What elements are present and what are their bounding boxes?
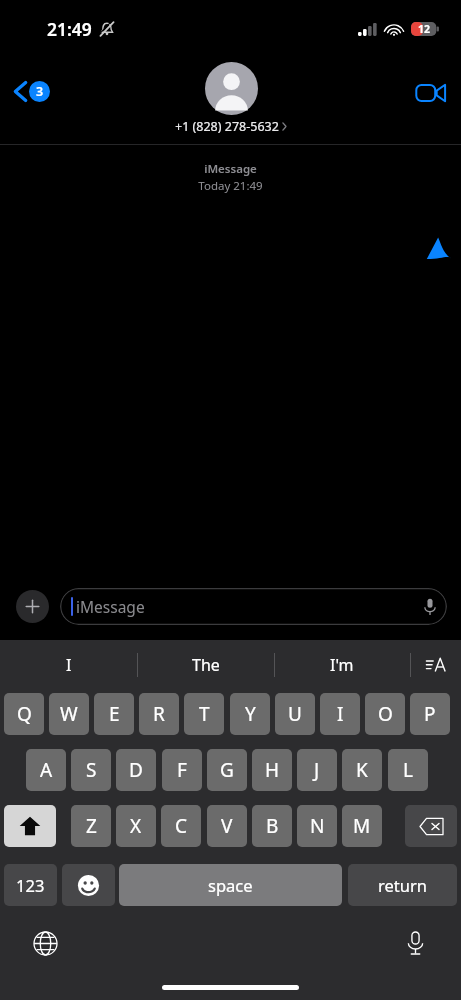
button[interactable]: Back to conversations, 3 unread xyxy=(8,76,56,107)
button[interactable]: iMessage text field xyxy=(60,588,447,625)
staticText: 3 xyxy=(36,83,44,100)
button[interactable]: M xyxy=(342,805,382,847)
staticText: space xyxy=(208,874,253,896)
button[interactable]: F xyxy=(162,749,202,791)
button[interactable]: Dictation xyxy=(400,928,430,958)
button[interactable]: L xyxy=(388,749,428,791)
staticText: J xyxy=(314,757,320,783)
staticText: A xyxy=(40,757,53,783)
staticText: R xyxy=(153,701,165,727)
staticText: V xyxy=(221,813,233,839)
staticText: I'm xyxy=(330,654,354,676)
staticText: W xyxy=(60,701,78,727)
button[interactable]: X xyxy=(116,805,156,847)
staticText: O xyxy=(378,701,393,727)
button[interactable]: Q xyxy=(4,693,44,735)
button[interactable]: Y xyxy=(230,693,270,735)
button[interactable]: U xyxy=(275,693,315,735)
button[interactable]: 123 xyxy=(4,864,57,906)
button[interactable]: K xyxy=(342,749,382,791)
staticText: The xyxy=(192,654,220,676)
button[interactable]: FaceTime video call xyxy=(411,78,451,108)
staticText: Today 21:49 xyxy=(0,178,461,194)
staticText: U xyxy=(288,701,302,727)
button[interactable]: C xyxy=(161,805,201,847)
button[interactable]: The xyxy=(137,640,274,690)
button[interactable]: A xyxy=(26,749,66,791)
staticText: iMessage xyxy=(76,596,424,617)
button[interactable]: W xyxy=(49,693,89,735)
staticText: 21:49 xyxy=(47,17,92,41)
button[interactable]: H xyxy=(252,749,292,791)
button[interactable]: return xyxy=(348,864,457,906)
staticText: +1 (828) 278-5632 xyxy=(175,118,279,135)
staticText: Q xyxy=(17,701,32,727)
button[interactable]: D xyxy=(116,749,156,791)
button[interactable]: Emoji keyboard xyxy=(62,864,115,906)
button[interactable]: G xyxy=(207,749,247,791)
button[interactable]: N xyxy=(297,805,337,847)
staticText: D xyxy=(129,757,143,783)
staticText: 12 xyxy=(418,22,431,36)
button[interactable]: V xyxy=(207,805,247,847)
button[interactable]: P xyxy=(410,693,450,735)
staticText: L xyxy=(403,757,413,783)
staticText: X xyxy=(130,813,142,839)
staticText: G xyxy=(220,757,234,783)
button[interactable]: J xyxy=(297,749,337,791)
staticText: C xyxy=(175,813,188,839)
staticText: Y xyxy=(245,701,256,727)
staticText: B xyxy=(266,813,279,839)
button[interactable]: Text formatting options xyxy=(410,640,461,690)
button[interactable]: R xyxy=(139,693,179,735)
button[interactable]: Z xyxy=(71,805,111,847)
button[interactable]: I xyxy=(0,640,137,690)
staticText: N xyxy=(310,813,325,839)
staticText: H xyxy=(265,757,280,783)
button[interactable]: B xyxy=(252,805,292,847)
staticText: I xyxy=(66,654,72,676)
staticText: I xyxy=(337,701,344,727)
button[interactable]: I'm xyxy=(274,640,410,690)
button[interactable]: Backspace xyxy=(405,805,457,847)
staticText: M xyxy=(353,813,371,839)
staticText: K xyxy=(356,757,368,783)
button[interactable]: +1 (828) 278-5632 xyxy=(175,62,287,135)
staticText: T xyxy=(199,701,210,727)
staticText: return xyxy=(378,874,427,896)
button[interactable]: space xyxy=(119,864,342,906)
button[interactable]: O xyxy=(365,693,405,735)
button[interactable]: I xyxy=(320,693,360,735)
button[interactable]: S xyxy=(71,749,111,791)
button[interactable]: Add attachment xyxy=(16,590,49,623)
staticText: E xyxy=(109,701,120,727)
staticText: 123 xyxy=(16,874,45,896)
button[interactable]: T xyxy=(184,693,224,735)
staticText: F xyxy=(177,757,187,783)
staticText: P xyxy=(424,701,436,727)
staticText: iMessage xyxy=(0,161,461,177)
button[interactable]: E xyxy=(94,693,134,735)
staticText: Z xyxy=(86,813,97,839)
staticText: S xyxy=(86,757,97,783)
button[interactable]: Change keyboard xyxy=(30,928,60,958)
button[interactable]: Shift xyxy=(4,805,56,847)
